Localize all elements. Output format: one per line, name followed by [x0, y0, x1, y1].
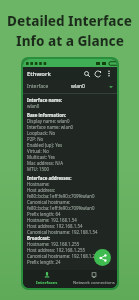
staticText: Host address: [27, 187, 56, 193]
staticText: Display name: wlan0 [27, 118, 70, 124]
staticText: Host address: 192.168.1.54 [27, 223, 83, 229]
button[interactable]: Interface [23, 80, 117, 93]
staticText: Loopback: No [27, 130, 56, 136]
staticText: Mac address: N/A [27, 160, 64, 166]
staticText: Host address: 192.168.1.255 [27, 247, 85, 253]
staticText: MTU: 1500 [27, 166, 49, 172]
staticText: Interface addresses: [27, 175, 72, 181]
button[interactable]: More options [103, 68, 114, 79]
staticText: Interface [27, 83, 49, 90]
staticText: Interfaces [36, 280, 58, 286]
staticText: Ethwork [27, 70, 51, 78]
staticText: Canonical hostname: 192.168.1.54 [27, 229, 98, 235]
staticText: fe80::bcba:1eff:fe90:c709%wlan0 [27, 193, 95, 199]
staticText: Interface name: wlan0 [27, 124, 74, 130]
staticText: Detailed Interface [7, 12, 132, 30]
staticText: Broadcast: [27, 235, 51, 241]
staticText: Interface name: [27, 97, 63, 103]
staticText: Base information: [27, 112, 67, 118]
staticText: Prefix length: 24 [27, 259, 61, 265]
button[interactable]: Network connections [70, 270, 117, 288]
button[interactable]: Search [81, 68, 92, 79]
staticText: Virtual: No [27, 148, 49, 154]
staticText: Multicast: Yes [27, 154, 55, 160]
staticText: Hostname: fe80::bcba:1eff:fe90:c709%wlan… [27, 181, 113, 187]
staticText: wlan0 [27, 103, 40, 109]
staticText: Hostname: 192.168.1.54 [27, 217, 77, 223]
staticText: Hostname: 192.168.1.255 [27, 241, 80, 247]
staticText: Canonical hostname: 192.168.1.255 [27, 253, 101, 259]
button[interactable]: Interfaces [23, 270, 70, 288]
button[interactable]: Refresh [92, 68, 103, 79]
staticText: Prefix length: 64 [27, 211, 61, 217]
button[interactable]: Share [94, 249, 111, 266]
staticText: Network connections [73, 280, 115, 286]
staticText: P2P: No [27, 136, 44, 142]
staticText: wlan0 [71, 83, 85, 90]
staticText: Info at a Glance [16, 32, 124, 50]
staticText: Canonical hostname: [27, 199, 71, 205]
staticText: fe80::bcba:1eff:fe90:c709%wlan0 [27, 205, 95, 211]
staticText: Enabled (up): Yes [27, 142, 62, 148]
